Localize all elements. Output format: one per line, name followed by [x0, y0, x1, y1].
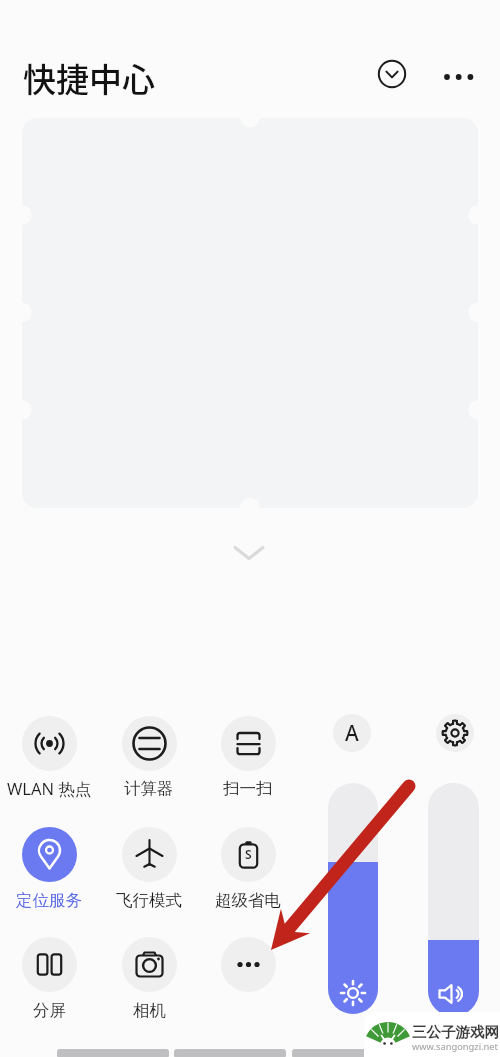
button[interactable] [221, 827, 276, 882]
staticText: 分屏 [33, 1000, 66, 1021]
button[interactable] [376, 58, 408, 90]
staticText: S [245, 846, 252, 862]
staticText: 飞行模式 [116, 890, 182, 911]
button[interactable] [122, 827, 177, 882]
staticText: 定位服务 [16, 890, 82, 911]
staticText: 扫一扫 [223, 778, 273, 799]
button[interactable] [122, 937, 177, 992]
button[interactable] [428, 783, 479, 1016]
button[interactable] [22, 827, 77, 882]
staticText: 计算器 [124, 778, 174, 799]
staticText: 三公子游戏网 [412, 1023, 499, 1041]
staticText: WLAN 热点 [7, 777, 92, 800]
button[interactable] [22, 937, 77, 992]
staticText: A [345, 719, 359, 748]
staticText: 超级省电 [215, 890, 281, 911]
staticText: www.sangongzi.net [412, 1040, 498, 1053]
button[interactable] [221, 716, 276, 771]
button[interactable] [436, 714, 474, 752]
staticText: 快捷中心 [23, 54, 155, 102]
button[interactable] [22, 716, 77, 771]
button[interactable] [221, 937, 276, 992]
button[interactable] [328, 783, 378, 1014]
button[interactable] [440, 58, 478, 96]
button[interactable] [122, 716, 177, 771]
button[interactable]: A [333, 714, 371, 752]
staticText: 相机 [133, 1000, 166, 1021]
